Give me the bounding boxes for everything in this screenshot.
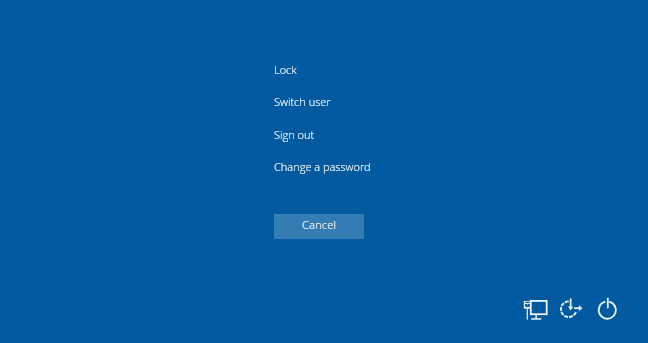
button[interactable]: Ease of Access [558, 296, 586, 324]
button[interactable]: Lock [274, 62, 297, 77]
staticText: Sign out [274, 127, 315, 142]
button[interactable]: Network [519, 296, 551, 324]
staticText: Cancel [302, 217, 337, 233]
staticText: Switch user [274, 94, 331, 109]
button[interactable]: Change a password [274, 159, 371, 174]
button[interactable]: Power [596, 295, 624, 325]
button[interactable]: Sign out [274, 127, 315, 142]
staticText: Change a password [274, 159, 371, 174]
staticText: Lock [274, 62, 297, 77]
button[interactable]: Switch user [274, 94, 331, 109]
button[interactable]: Cancel [274, 214, 364, 239]
